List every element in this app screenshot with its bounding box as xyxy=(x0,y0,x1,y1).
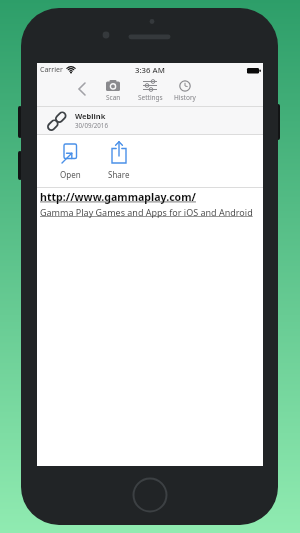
button[interactable]: http://www.gammaplay.com/ xyxy=(40,190,196,204)
button[interactable]: Share xyxy=(99,139,139,183)
staticText: Scan xyxy=(106,93,121,102)
staticText: History xyxy=(174,93,196,102)
button[interactable]: History xyxy=(169,78,201,102)
button[interactable]: Scan xyxy=(97,78,129,102)
button[interactable]: Settings xyxy=(134,78,166,102)
staticText: Share xyxy=(108,169,130,180)
button[interactable]: Gamma Play Games and Apps for iOS and An… xyxy=(40,206,253,218)
button[interactable]: Weblink xyxy=(37,107,263,134)
staticText: Weblink xyxy=(75,111,106,121)
button[interactable]: Open xyxy=(50,139,90,183)
staticText: 30/09/2016 xyxy=(75,121,108,129)
staticText: Carrier xyxy=(40,65,63,75)
button[interactable] xyxy=(75,81,89,97)
staticText: Settings xyxy=(138,93,163,102)
staticText: Open xyxy=(60,169,81,180)
staticText: 3:36 AM xyxy=(135,65,165,76)
